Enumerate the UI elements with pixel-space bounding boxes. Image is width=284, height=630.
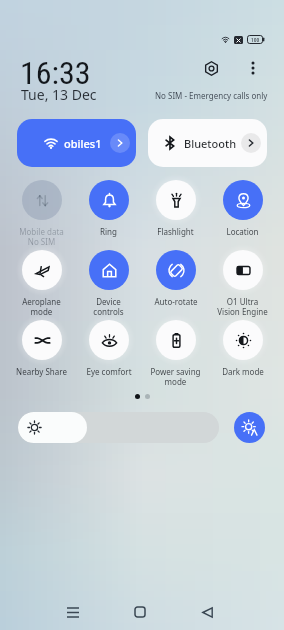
button[interactable]: Bluetooth — [148, 119, 267, 167]
staticText: Auto-rotate — [154, 296, 198, 307]
button[interactable]: Mobile data No SIM — [8, 174, 75, 247]
staticText: Bluetooth — [184, 136, 241, 151]
button[interactable]: Eye comfort — [75, 314, 142, 377]
button[interactable]: obiles1 — [17, 119, 136, 167]
button[interactable]: More options — [240, 55, 266, 81]
button[interactable]: Home — [122, 595, 158, 629]
staticText: 100 — [251, 37, 260, 43]
staticText: No SIM - Emergency calls only — [155, 90, 268, 101]
staticText: Aeroplane mode — [22, 296, 61, 317]
staticText: Nearby Share — [16, 366, 67, 377]
staticText: Ring — [100, 226, 117, 237]
button[interactable]: O1 Ultra Vision Engine — [209, 244, 276, 317]
button[interactable]: Location — [209, 174, 276, 237]
staticText: Location — [226, 226, 259, 237]
staticText: Dark mode — [222, 366, 264, 377]
button[interactable]: Settings — [198, 55, 224, 81]
staticText: O1 Ultra Vision Engine — [217, 296, 268, 317]
staticText: Device controls — [93, 296, 124, 317]
button[interactable]: Brightness — [18, 412, 219, 443]
staticText: Power saving mode — [150, 366, 201, 387]
staticText: Mobile data No SIM — [19, 226, 64, 247]
button[interactable]: Nearby Share — [8, 314, 75, 377]
button[interactable]: Auto brightness — [234, 412, 265, 443]
staticText: 16:33 — [20, 54, 91, 92]
button[interactable]: Aeroplane mode — [8, 244, 75, 317]
staticText: Flashlight — [157, 226, 194, 237]
button[interactable]: Back — [189, 595, 225, 629]
button[interactable]: Ring — [75, 174, 142, 237]
button[interactable]: Power saving mode — [142, 314, 209, 387]
staticText: Tue, 13 Dec — [21, 85, 97, 104]
button[interactable]: Device controls — [75, 244, 142, 317]
staticText: obiles1 — [64, 136, 110, 151]
button[interactable]: Dark mode — [209, 314, 276, 377]
button[interactable]: Flashlight — [142, 174, 209, 237]
button[interactable]: Recent apps — [55, 595, 91, 629]
staticText: Eye comfort — [86, 366, 132, 377]
button[interactable]: Auto-rotate — [142, 244, 209, 307]
